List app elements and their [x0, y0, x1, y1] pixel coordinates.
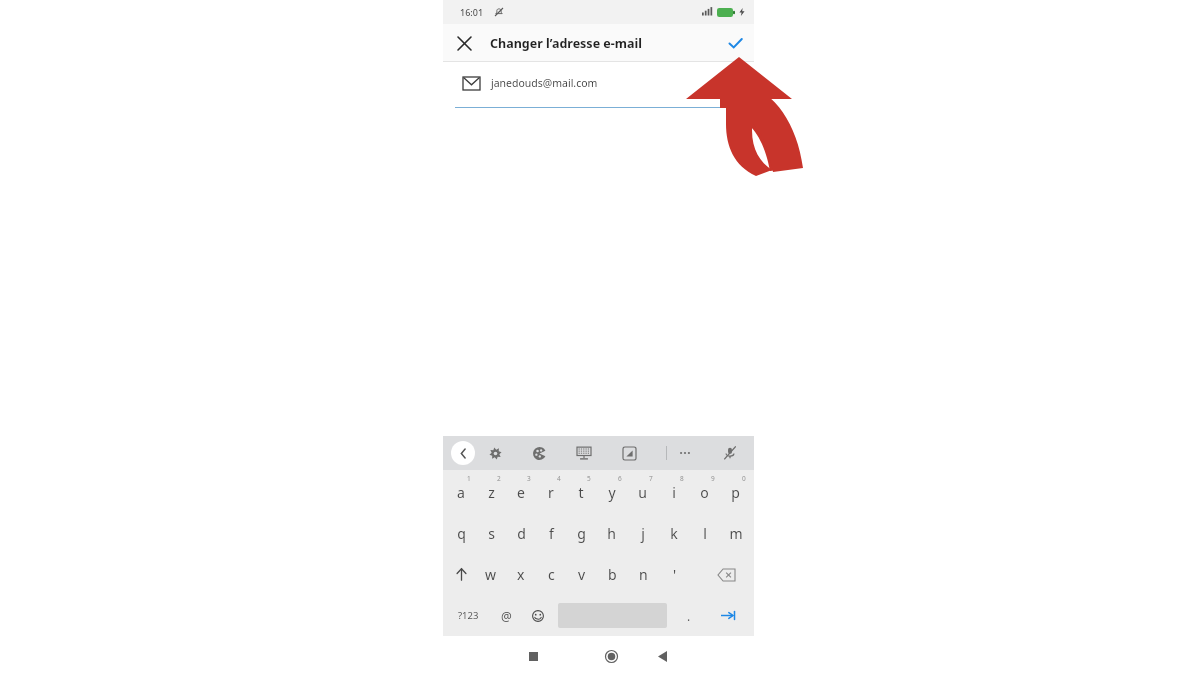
button[interactable]: r: [536, 472, 566, 513]
staticText: y: [608, 483, 616, 502]
staticText: 6: [618, 474, 622, 483]
button[interactable]: p: [720, 472, 751, 513]
staticText: 7: [649, 474, 653, 483]
staticText: v: [578, 565, 586, 584]
button[interactable]: x: [506, 554, 536, 595]
staticText: x: [517, 565, 525, 584]
button[interactable]: ': [659, 554, 690, 595]
button[interactable]: i: [658, 472, 689, 513]
staticText: b: [608, 565, 617, 584]
staticText: 1: [467, 474, 471, 483]
button[interactable]: Mode une main: [617, 441, 641, 465]
staticText: z: [488, 483, 495, 502]
staticText: t: [578, 483, 584, 502]
button[interactable]: ?123: [446, 595, 491, 636]
staticText: m: [729, 524, 743, 543]
button[interactable]: Retour arrière: [701, 554, 751, 595]
button[interactable]: Fermer: [451, 30, 477, 56]
staticText: i: [672, 483, 676, 502]
staticText: ?123: [458, 609, 479, 622]
button[interactable]: j: [627, 513, 658, 554]
staticText: 0: [742, 474, 746, 483]
button[interactable]: q: [446, 513, 476, 554]
button[interactable]: Valider: [721, 29, 749, 57]
button[interactable]: Entrée: [706, 595, 751, 636]
button[interactable]: janedouds@mail.com: [491, 76, 598, 90]
staticText: k: [670, 524, 678, 543]
button[interactable]: Emoji: [522, 595, 553, 636]
button[interactable]: @: [491, 595, 522, 636]
button[interactable]: Applications récentes: [519, 642, 547, 670]
staticText: a: [457, 483, 465, 502]
staticText: 2: [497, 474, 501, 483]
button[interactable]: d: [506, 513, 536, 554]
button[interactable]: l: [689, 513, 720, 554]
button[interactable]: z: [476, 472, 506, 513]
staticText: Changer l’adresse e-mail: [490, 35, 642, 52]
staticText: 4: [557, 474, 561, 483]
staticText: 3: [527, 474, 531, 483]
button[interactable]: y: [596, 472, 627, 513]
staticText: @: [501, 608, 512, 624]
staticText: j: [641, 524, 645, 543]
staticText: n: [639, 565, 648, 584]
staticText: p: [731, 483, 740, 502]
button[interactable]: Thème: [527, 441, 551, 465]
staticText: l: [703, 524, 707, 543]
button[interactable]: n: [628, 554, 659, 595]
button[interactable]: Majuscule: [446, 554, 476, 595]
button[interactable]: s: [476, 513, 506, 554]
staticText: 9: [711, 474, 715, 483]
button[interactable]: a: [446, 472, 476, 513]
button[interactable]: t: [566, 472, 596, 513]
staticText: 5: [587, 474, 591, 483]
staticText: q: [457, 524, 466, 543]
button[interactable]: Retour: [648, 642, 676, 670]
button[interactable]: h: [596, 513, 627, 554]
staticText: 8: [680, 474, 684, 483]
button[interactable]: Plus d’options: [673, 441, 697, 465]
button[interactable]: Micro désactivé: [718, 441, 742, 465]
staticText: 16:01: [460, 6, 484, 18]
staticText: u: [638, 483, 647, 502]
button[interactable]: e: [506, 472, 536, 513]
button[interactable]: c: [536, 554, 566, 595]
button[interactable]: Paramètres: [483, 441, 507, 465]
button[interactable]: w: [476, 554, 506, 595]
button[interactable]: v: [566, 554, 597, 595]
button[interactable]: Disposition du clavier: [572, 441, 596, 465]
staticText: d: [517, 524, 526, 543]
button[interactable]: f: [536, 513, 566, 554]
staticText: s: [488, 524, 495, 543]
button[interactable]: k: [658, 513, 689, 554]
staticText: o: [700, 483, 709, 502]
button[interactable]: Retour: [451, 441, 475, 465]
staticText: h: [607, 524, 616, 543]
staticText: c: [548, 565, 555, 584]
staticText: r: [548, 483, 554, 502]
button[interactable]: o: [689, 472, 720, 513]
button[interactable]: u: [627, 472, 658, 513]
staticText: f: [549, 524, 554, 543]
staticText: g: [577, 524, 586, 543]
button[interactable]: m: [720, 513, 751, 554]
staticText: .: [687, 608, 691, 624]
staticText: w: [485, 565, 497, 584]
staticText: ': [673, 565, 677, 584]
button[interactable]: g: [566, 513, 596, 554]
button[interactable]: Accueil: [597, 642, 625, 670]
staticText: e: [517, 483, 525, 502]
button[interactable]: b: [597, 554, 628, 595]
button[interactable]: .: [672, 595, 706, 636]
